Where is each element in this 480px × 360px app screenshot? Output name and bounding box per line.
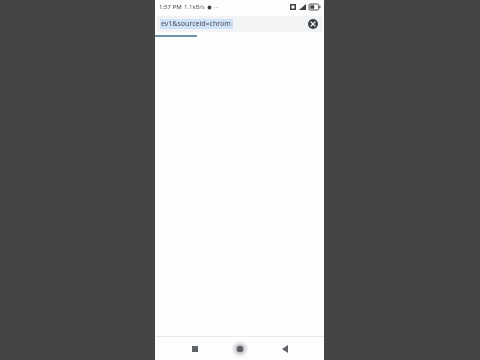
staticText: 1:57 PM	[159, 3, 182, 11]
staticText: ···	[214, 3, 219, 11]
staticText: 1.1kB/s	[184, 3, 205, 11]
button[interactable]: Clear text	[307, 18, 319, 30]
button[interactable]: Home	[230, 339, 250, 359]
button[interactable]: ev1&sourceid=chrome-mobile&ie=UTF-8	[157, 16, 322, 32]
button[interactable]: Recent apps	[185, 339, 205, 359]
staticText: ev1&sourceid=chrome-mobile&ie=UTF-8	[161, 19, 232, 29]
button[interactable]: Back	[275, 339, 295, 359]
